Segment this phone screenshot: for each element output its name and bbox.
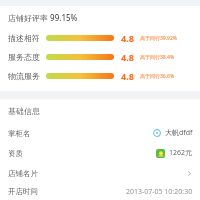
button[interactable]: 物流服务 [0,67,200,85]
button[interactable]: 掌柜名 [0,123,200,143]
staticText: 2013-07-05 10:20:30 [126,187,193,197]
staticText: 大帆dfdf [165,128,193,138]
staticText: 掌柜名 [8,129,31,138]
staticText: 1262元 [169,148,193,158]
button[interactable]: 店铺名片 [0,163,200,183]
button[interactable]: 描述相符 [0,29,200,47]
staticText: 开店时间 [8,187,38,196]
staticText: 店铺好评率 99.15% [8,12,78,23]
other: Chat [153,129,161,137]
other: More [186,170,193,177]
staticText: 店铺名片 [8,169,38,178]
staticText: 高于同行36.6% [140,73,175,80]
button[interactable]: 开店时间 [0,183,200,200]
staticText: 描述相符 [8,33,40,43]
button[interactable]: 服务态度 [0,48,200,66]
staticText: 高于同行39.92% [140,35,177,42]
other: Qualification [156,149,165,158]
button[interactable]: 资质 [0,143,200,163]
staticText: 资质 [8,149,23,158]
staticText: 基础信息 [8,106,40,116]
staticText: 高于同行38.4% [140,54,175,61]
staticText: 4.8 [121,51,134,63]
staticText: 4.8 [121,70,134,82]
staticText: 物流服务 [8,71,40,81]
staticText: 服务态度 [8,52,40,62]
staticText: 4.8 [121,32,134,44]
